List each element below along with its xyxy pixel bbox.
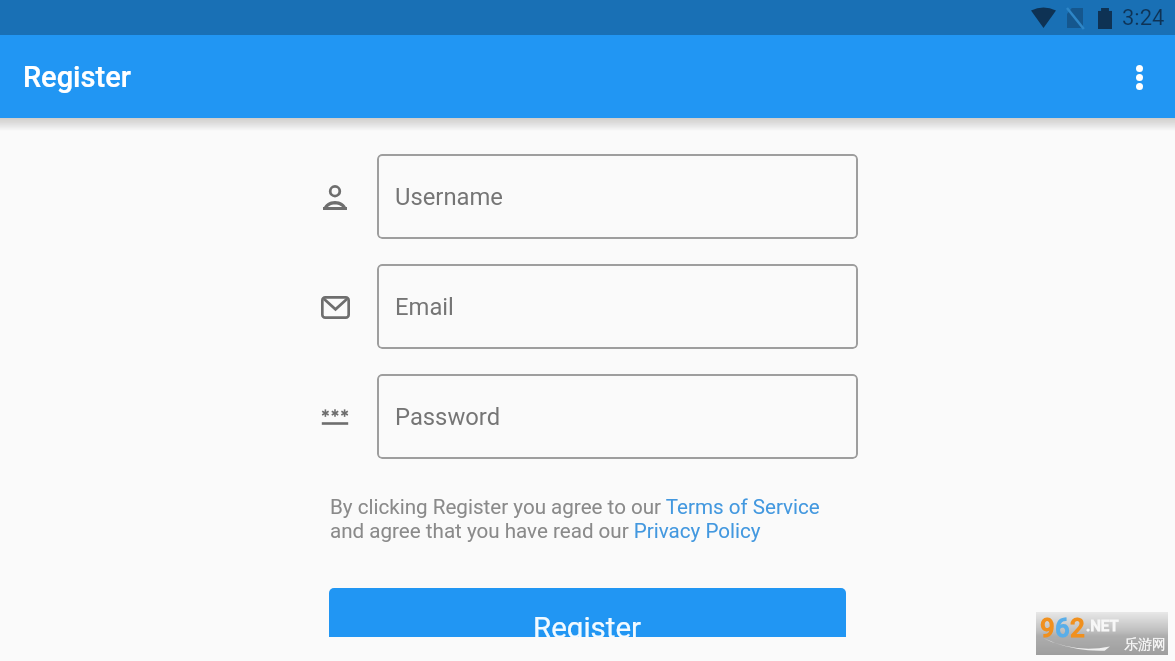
- staticText: 9: [1040, 613, 1055, 643]
- button[interactable]: By clicking Register you agree to our Te…: [330, 495, 820, 519]
- staticText: 6: [1055, 613, 1070, 643]
- button[interactable]: Register: [329, 588, 846, 637]
- staticText: Email: [395, 293, 454, 321]
- button[interactable]: Email: [377, 264, 858, 349]
- staticText: .NET: [1086, 617, 1119, 635]
- button[interactable]: Password: [377, 374, 858, 459]
- staticText: 2: [1070, 613, 1085, 643]
- button[interactable]: Username: [377, 154, 858, 239]
- button[interactable]: and agree that you have read our Privacy…: [330, 519, 761, 543]
- staticText: Username: [395, 183, 503, 211]
- staticText: 3:24: [1122, 5, 1165, 31]
- staticText: 乐游网: [1124, 636, 1166, 654]
- staticText: Register: [533, 611, 642, 637]
- staticText: Password: [395, 403, 501, 431]
- button[interactable]: More options: [1115, 53, 1163, 101]
- staticText: Register: [23, 60, 131, 94]
